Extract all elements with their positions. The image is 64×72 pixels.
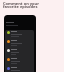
button[interactable] xyxy=(5,48,34,57)
button[interactable] xyxy=(5,57,34,66)
button[interactable] xyxy=(5,66,34,72)
button[interactable] xyxy=(5,30,34,39)
staticText: Comment on your xyxy=(3,1,39,6)
staticText: favorite episodes xyxy=(3,4,38,9)
button[interactable] xyxy=(5,39,34,48)
